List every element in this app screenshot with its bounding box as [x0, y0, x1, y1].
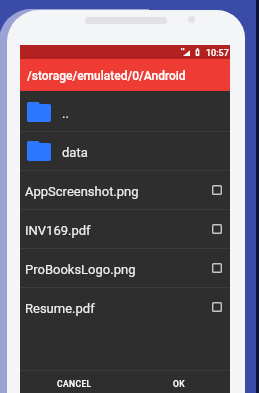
button[interactable]: AppScreenshot.png [20, 171, 230, 209]
staticText: AppScreenshot.png [25, 184, 139, 199]
button[interactable]: INV169.pdf [20, 210, 230, 248]
staticText: OK [173, 379, 186, 389]
button[interactable]: Select INV169.pdf [212, 224, 222, 234]
staticText: ProBooksLogo.png [25, 262, 136, 277]
button[interactable]: OK [127, 371, 232, 393]
button[interactable]: .. [20, 93, 230, 131]
button[interactable]: Resume.pdf [20, 288, 230, 326]
staticText: /storage/emulated/0/Android [27, 69, 186, 83]
button[interactable]: Select ProBooksLogo.png [212, 263, 222, 273]
staticText: Resume.pdf [25, 301, 95, 316]
button[interactable]: /storage/emulated/0/Android [20, 59, 230, 91]
button[interactable]: Select AppScreenshot.png [212, 185, 222, 195]
button[interactable]: CANCEL [22, 371, 127, 393]
button[interactable]: data [20, 132, 230, 170]
button[interactable]: ProBooksLogo.png [20, 249, 230, 287]
staticText: .. [62, 106, 69, 121]
staticText: INV169.pdf [25, 223, 91, 238]
staticText: data [62, 145, 88, 160]
button[interactable]: Select Resume.pdf [212, 302, 222, 312]
staticText: 10:57 [206, 48, 229, 59]
staticText: CANCEL [57, 379, 92, 389]
